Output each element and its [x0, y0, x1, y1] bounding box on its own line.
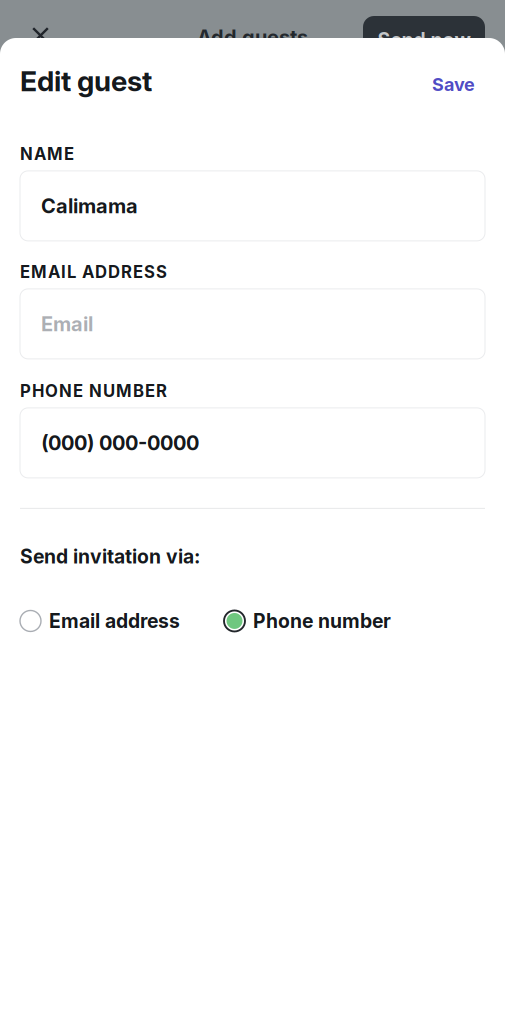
- staticText: Save: [432, 73, 475, 95]
- staticText: Send invitation via:: [20, 545, 200, 568]
- staticText: Phone number: [253, 609, 391, 633]
- staticText: E M A I L A D D R E S S: [20, 262, 167, 282]
- staticText: (000) 000-0000: [41, 431, 199, 455]
- button[interactable]: Email address: [20, 609, 180, 633]
- button[interactable]: (000) 000-0000: [0, 408, 505, 478]
- staticText: Edit guest: [20, 64, 152, 98]
- staticText: Email address: [49, 609, 180, 633]
- staticText: Send now: [377, 28, 470, 52]
- staticText: Email: [41, 312, 93, 336]
- button[interactable]: Calimama: [0, 171, 505, 241]
- button[interactable]: Email: [0, 289, 505, 359]
- staticText: N A M E: [20, 144, 74, 164]
- button[interactable]: Save: [432, 66, 485, 95]
- button[interactable]: Close: [0, 0, 49, 44]
- staticText: Add guests: [197, 25, 308, 49]
- button[interactable]: Send now: [363, 16, 485, 64]
- button[interactable]: Phone number: [224, 609, 391, 633]
- staticText: P H O N E N U M B E R: [20, 381, 167, 401]
- staticText: Calimama: [41, 194, 138, 218]
